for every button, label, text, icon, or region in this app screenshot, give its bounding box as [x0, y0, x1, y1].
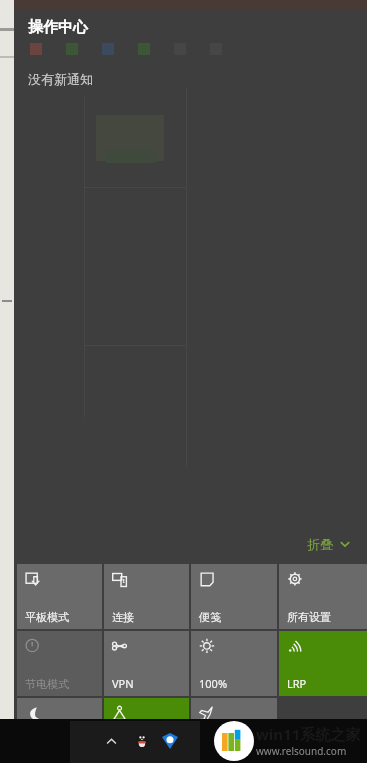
button[interactable]: 100%	[191, 631, 277, 696]
staticText: VPN	[112, 676, 134, 691]
button[interactable]: Security	[160, 731, 180, 751]
button[interactable]: 定位	[104, 698, 189, 763]
staticText: 便笺	[199, 610, 221, 624]
staticText: 100%	[199, 676, 228, 691]
button[interactable]: LRP	[279, 631, 367, 696]
button[interactable]: 免打扰时间	[17, 698, 102, 763]
button[interactable]: 平板模式	[17, 564, 102, 629]
staticText: 节电模式	[25, 677, 69, 691]
staticText: LRP	[287, 676, 307, 691]
button[interactable]: QQ	[132, 731, 152, 751]
button[interactable]: 连接	[104, 564, 189, 629]
staticText: 飞行模式	[199, 744, 243, 758]
button[interactable]: Show hidden icons	[100, 730, 122, 752]
staticText: 操作中心	[28, 18, 88, 37]
staticText: 折叠	[307, 536, 333, 552]
button[interactable]: 便笺	[191, 564, 277, 629]
button[interactable]: 折叠	[291, 528, 367, 560]
staticText: win11系统之家	[256, 724, 361, 744]
staticText: www.relsound.com	[256, 744, 347, 758]
staticText: 所有设置	[287, 610, 331, 624]
button[interactable]: VPN	[104, 631, 189, 696]
button[interactable]: 节电模式	[17, 631, 102, 696]
button[interactable]: 所有设置	[279, 564, 367, 629]
staticText: 连接	[112, 610, 134, 624]
staticText: 免打扰时间	[25, 744, 80, 758]
staticText: 没有新通知	[28, 71, 93, 87]
button[interactable]: 飞行模式	[191, 698, 277, 763]
staticText: 平板模式	[25, 610, 69, 624]
